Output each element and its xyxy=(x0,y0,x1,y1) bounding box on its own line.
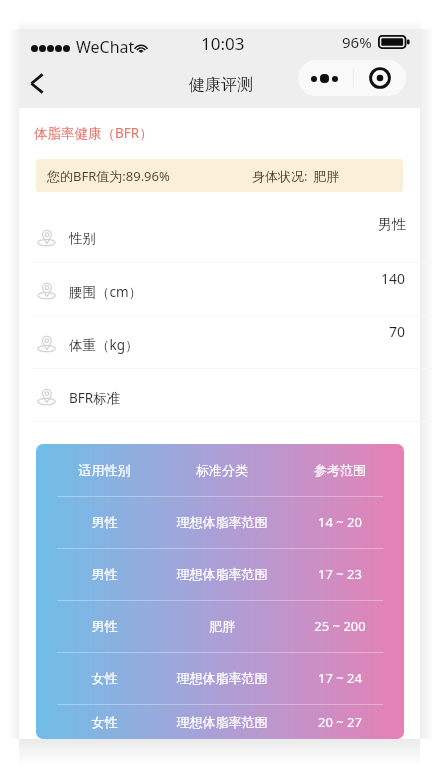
staticText: 肥胖 xyxy=(163,618,281,634)
staticText: 14 ~ 20 xyxy=(281,513,399,531)
staticText: 理想体脂率范围 xyxy=(163,714,281,730)
staticText: 男性 xyxy=(46,618,163,634)
staticText: 适用性别 xyxy=(46,462,163,478)
staticText: 体脂率健康（BFR） xyxy=(34,124,153,142)
button[interactable]: Back xyxy=(18,64,56,102)
staticText: 您的BFR值为:89.96% xyxy=(47,167,170,185)
button[interactable]: More xyxy=(298,60,353,96)
staticText: 17 ~ 23 xyxy=(281,565,399,583)
button[interactable]: 性别 xyxy=(19,210,420,263)
staticText: 参考范围 xyxy=(281,462,399,478)
staticText: 17 ~ 24 xyxy=(281,669,399,687)
staticText: 女性 xyxy=(46,714,163,730)
button[interactable]: 腰围（cm） xyxy=(19,263,420,316)
staticText: BFR标准 xyxy=(69,389,121,407)
staticText: 腰围（cm） xyxy=(69,283,143,301)
staticText: 女性 xyxy=(46,670,163,686)
staticText: 体重（kg） xyxy=(69,336,139,354)
staticText: 身体状况 xyxy=(252,168,304,184)
staticText: 男性 xyxy=(378,216,406,234)
staticText: 理想体脂率范围 xyxy=(163,670,281,686)
button[interactable]: BFR标准 xyxy=(19,369,420,422)
staticText: WeChat xyxy=(76,36,135,58)
staticText: 理想体脂率范围 xyxy=(163,514,281,530)
staticText: 男性 xyxy=(46,514,163,530)
staticText: 96% xyxy=(342,32,372,52)
button[interactable]: Close xyxy=(354,60,406,96)
staticText: 男性 xyxy=(46,566,163,582)
staticText: : xyxy=(304,167,308,185)
staticText: 性别 xyxy=(69,230,96,247)
staticText: 肥胖 xyxy=(313,168,339,184)
staticText: 健康评测 xyxy=(189,75,253,95)
staticText: 140 xyxy=(381,269,406,288)
staticText: 10:03 xyxy=(201,32,245,55)
staticText: 理想体脂率范围 xyxy=(163,566,281,582)
staticText: 25 ~ 200 xyxy=(281,617,399,635)
staticText: 标准分类 xyxy=(163,462,281,478)
button[interactable]: 体重（kg） xyxy=(19,316,420,369)
staticText: 20 ~ 27 xyxy=(281,713,399,731)
staticText: 70 xyxy=(389,322,406,341)
